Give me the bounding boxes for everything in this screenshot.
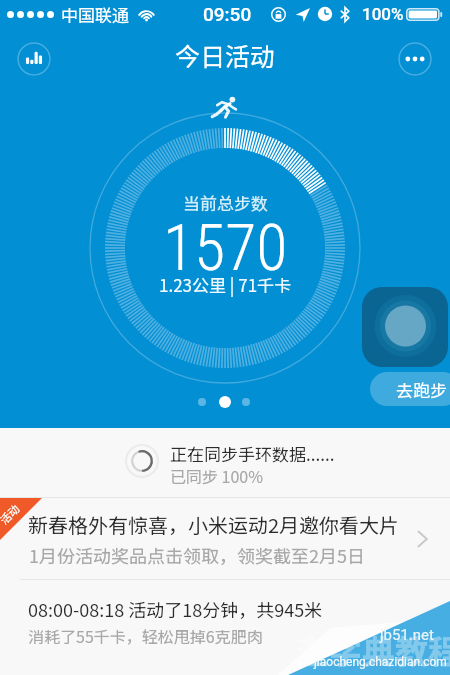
button[interactable]: Page 2	[220, 396, 242, 408]
staticText: 查字典教程网	[296, 626, 450, 674]
button[interactable]: 08:00-08:18 活动了18分钟，共945米	[0, 580, 450, 675]
staticText: 已同步 100%	[170, 464, 263, 487]
staticText: 活动	[0, 501, 22, 527]
staticText: 新春格外有惊喜，小米运动2月邀你看大片	[28, 510, 400, 539]
button[interactable]: 新春格外有惊喜，小米运动2月邀你看大片	[0, 498, 450, 579]
staticText: 1.23公里 | 71千卡	[159, 272, 292, 297]
button[interactable]: 去跑步	[370, 372, 450, 406]
staticText: 消耗了55千卡，轻松甩掉6克肥肉	[28, 624, 263, 647]
staticText: jiaocheng.chazidian.com	[314, 655, 447, 669]
button[interactable]: Page 1	[198, 396, 220, 408]
button[interactable]: Statistics	[17, 42, 51, 76]
staticText: 当前总步数	[183, 190, 268, 215]
staticText: 中国联通	[61, 2, 129, 27]
staticText: 1月份活动奖品点击领取，领奖截至2月5日	[29, 542, 365, 568]
button[interactable]: Start running	[362, 287, 448, 367]
staticText: 今日活动	[175, 37, 276, 73]
button[interactable]: More options	[398, 42, 432, 76]
staticText: 去跑步	[396, 377, 447, 402]
staticText: 1570	[163, 211, 288, 286]
button[interactable]: Page 3	[242, 396, 264, 408]
staticText: jb51.net	[380, 626, 434, 644]
staticText: 100%	[362, 4, 404, 24]
staticText: 08:00-08:18 活动了18分钟，共945米	[28, 596, 323, 622]
staticText: 09:50	[203, 3, 252, 25]
button[interactable]: 正在同步手环数据......	[0, 428, 450, 497]
staticText: 正在同步手环数据......	[170, 441, 335, 466]
